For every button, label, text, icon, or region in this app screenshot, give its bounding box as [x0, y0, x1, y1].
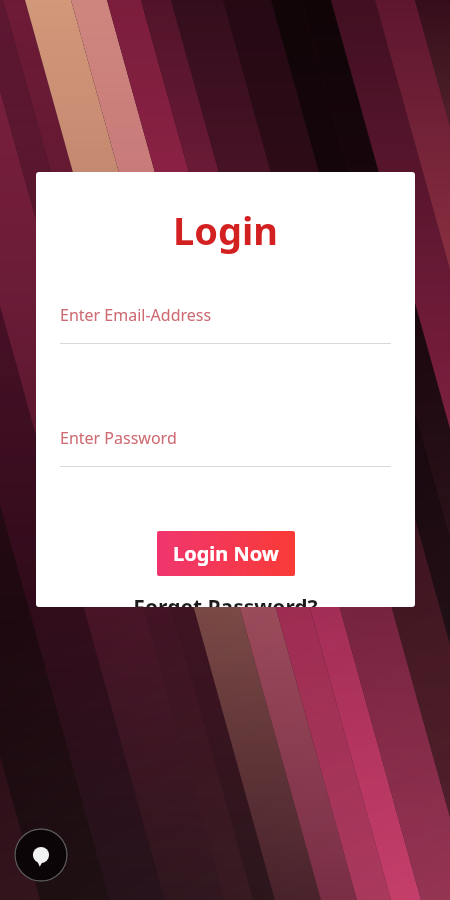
button[interactable]: Enter Email-Address	[60, 304, 391, 344]
button[interactable]: Login Now	[157, 531, 295, 576]
staticText: Enter Password	[60, 427, 177, 449]
staticText: Login Now	[173, 540, 279, 567]
staticText: Login	[60, 204, 391, 256]
button[interactable]: Assistant	[14, 828, 68, 882]
button[interactable]: Forget Password?	[60, 593, 391, 607]
staticText: Enter Email-Address	[60, 304, 212, 326]
button[interactable]: Enter Password	[60, 427, 391, 467]
